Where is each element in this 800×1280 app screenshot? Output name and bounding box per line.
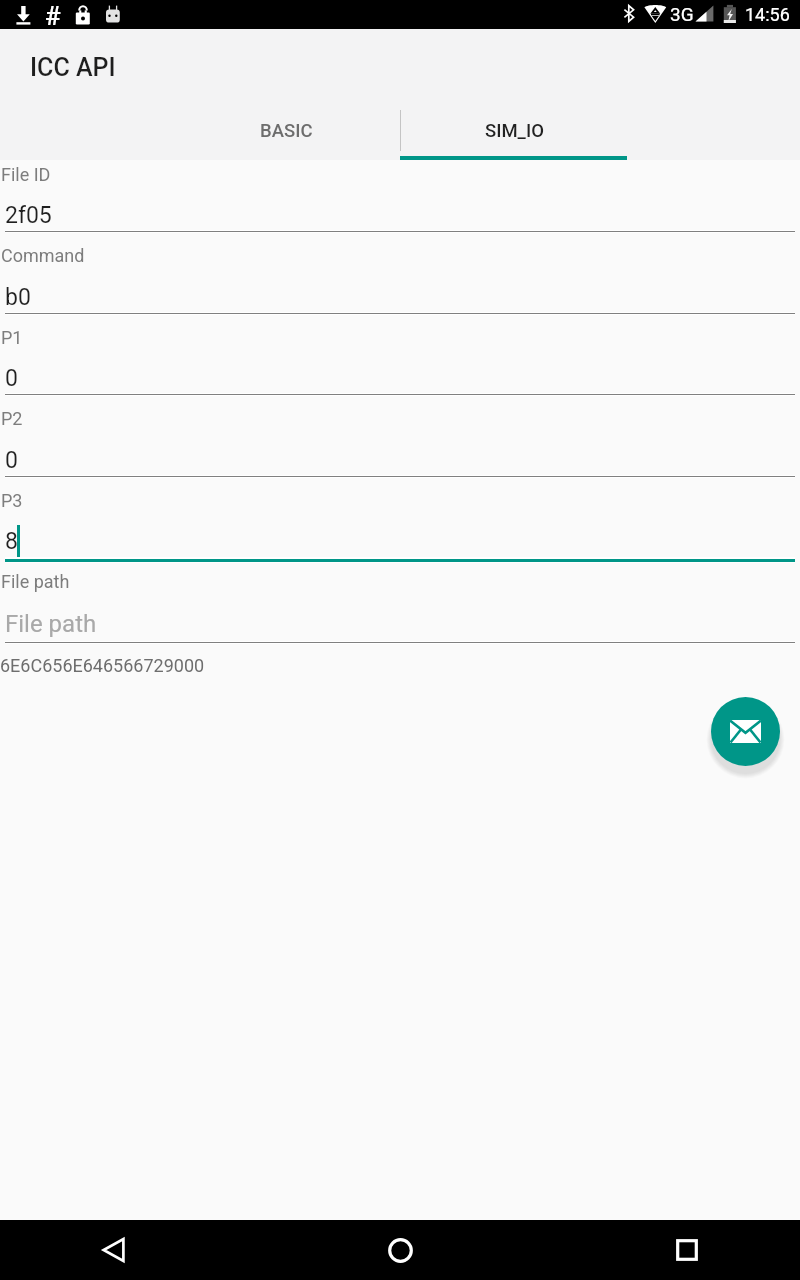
staticText: File ID [1,164,51,185]
staticText: 8 [5,528,18,555]
staticText: 0 [5,447,18,474]
button[interactable]: P2 [0,427,800,479]
button[interactable]: Recent apps [647,1220,727,1280]
staticText: 3G [670,3,694,25]
button[interactable]: File ID [0,182,800,234]
staticText: File path [1,571,70,592]
button[interactable]: Back [73,1220,153,1280]
staticText: 6E6C656E646566729000 [0,655,205,676]
button[interactable]: Command [0,264,800,316]
button[interactable]: P1 [0,345,800,397]
button[interactable]: BASIC [173,104,400,158]
button[interactable]: P3 [0,508,800,560]
staticText: b0 [5,284,31,311]
staticText: # [45,1,61,30]
button[interactable]: SIM_IO [400,104,628,158]
staticText: P2 [1,408,23,429]
staticText: 0 [5,365,18,392]
staticText: BASIC [260,120,313,142]
staticText: Command [1,245,85,266]
staticText: ICC API [30,53,116,82]
staticText: SIM_IO [485,120,544,142]
staticText: 2f05 [5,202,52,229]
button[interactable]: Compose message [711,697,780,766]
button[interactable]: File path [0,590,800,642]
staticText: 14:56 [745,4,790,25]
staticText: P1 [1,327,23,348]
staticText: File path [5,610,97,638]
staticText: P3 [1,490,23,511]
button[interactable]: Home [360,1220,440,1280]
